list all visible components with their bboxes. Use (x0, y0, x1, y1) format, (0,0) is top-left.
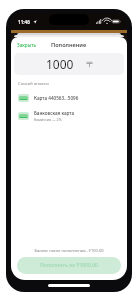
staticText: Способ оплаты (18, 81, 49, 87)
button[interactable]: Закрыть (11, 39, 41, 51)
staticText: 11:46 (18, 19, 30, 25)
button[interactable]: Карта (11, 106, 127, 126)
staticText: Комиссия — 2% (34, 117, 62, 122)
staticText: Карта 440563...5096 (34, 95, 79, 101)
button[interactable]: 1000 (14, 53, 124, 75)
staticText: Пополнение (51, 41, 87, 49)
staticText: Пополнить на ₸1000.00 (40, 262, 98, 269)
staticText: Банковская карта (34, 110, 75, 116)
other: Карта (18, 112, 29, 120)
staticText: 1000 (46, 56, 74, 72)
staticText: Баланс после пополнения - ₸100.00 (11, 248, 127, 253)
button[interactable]: Карта (11, 90, 127, 106)
other: Карта (18, 94, 29, 102)
staticText: Закрыть (17, 42, 37, 48)
button[interactable]: Пополнить на ₸1000.00 (17, 257, 121, 274)
